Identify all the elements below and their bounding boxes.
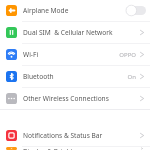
button[interactable]: Display & Brightness <box>0 147 150 150</box>
button[interactable]: Airplane Mode toggle <box>126 5 146 16</box>
staticText: Airplane Mode <box>23 6 126 15</box>
button[interactable]: Airplane Mode <box>0 0 150 21</box>
staticText: Notifications & Status Bar <box>23 131 139 140</box>
staticText: Dual SIM & Cellular Network <box>23 28 139 37</box>
staticText: Other Wireless Connections <box>23 94 139 103</box>
staticText: On <box>127 73 136 81</box>
button[interactable]: Bluetooth <box>0 66 150 87</box>
button[interactable]: Notifications & Status Bar <box>0 125 150 146</box>
staticText: Display & Brightness <box>23 147 139 150</box>
staticText: Bluetooth <box>23 72 127 81</box>
button[interactable]: Other Wireless Connections <box>0 88 150 109</box>
staticText: Wi-Fi <box>23 50 119 59</box>
staticText: OPPO <box>119 51 136 59</box>
button[interactable]: Wi-Fi <box>0 44 150 65</box>
button[interactable]: Dual SIM & Cellular Network <box>0 22 150 43</box>
